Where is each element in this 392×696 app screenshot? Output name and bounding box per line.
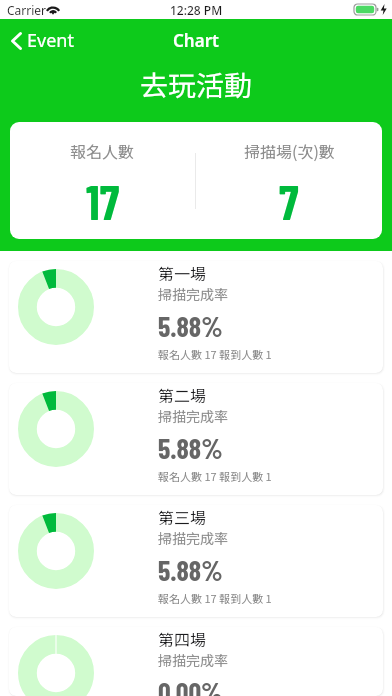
staticText: 5.88% xyxy=(158,431,223,465)
staticText: 17 xyxy=(86,172,120,230)
staticText: 5.88% xyxy=(158,553,223,587)
staticText: 掃描完成率 xyxy=(158,528,228,548)
staticText: 報名人數 17 報到人數 1 xyxy=(158,590,272,606)
staticText: 第二場 xyxy=(158,383,207,406)
staticText: 報名人數 17 報到人數 1 xyxy=(158,468,272,484)
staticText: Carrier xyxy=(7,2,47,18)
staticText: 去玩活動 xyxy=(0,64,392,105)
staticText: 掃描完成率 xyxy=(158,284,228,304)
staticText: Event xyxy=(27,28,74,53)
staticText: Chart xyxy=(173,29,219,52)
staticText: 掃描完成率 xyxy=(158,650,228,670)
button[interactable]: 第三場 xyxy=(9,505,383,617)
staticText: 第四場 xyxy=(158,627,207,650)
staticText: 報名人數 xyxy=(70,139,135,162)
staticText: 掃描完成率 xyxy=(158,406,228,426)
staticText: 第三場 xyxy=(158,505,207,528)
staticText: 0.00% xyxy=(158,675,223,696)
staticText: 報名人數 17 報到人數 1 xyxy=(158,346,272,362)
staticText: 12:28 PM xyxy=(170,2,223,18)
button[interactable]: 第四場 xyxy=(9,627,383,696)
staticText: 掃描場(次)數 xyxy=(244,139,335,162)
button[interactable]: Event xyxy=(0,22,86,59)
staticText: 5.88% xyxy=(158,309,223,343)
button[interactable]: 第二場 xyxy=(9,383,383,495)
staticText: 第一場 xyxy=(158,261,207,284)
button[interactable]: 第一場 xyxy=(9,261,383,373)
staticText: 7 xyxy=(279,172,299,230)
